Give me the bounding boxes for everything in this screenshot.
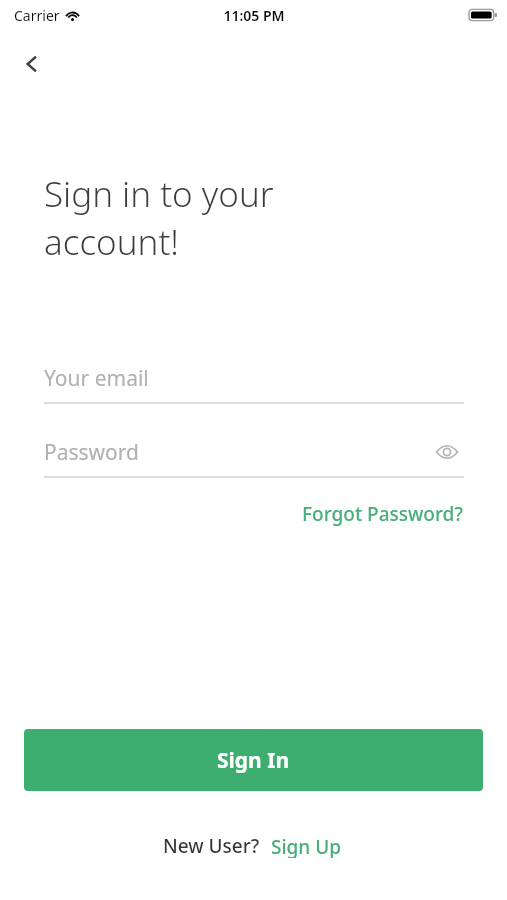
button[interactable]: Back [8,40,56,88]
staticText: Sign In [217,746,290,775]
staticText: New User? [163,833,260,859]
button[interactable]: Show password [430,435,464,469]
button[interactable]: Sign Up [269,830,344,862]
button[interactable]: Sign In [24,729,483,791]
staticText: Carrier [14,6,60,25]
staticText: Sign Up [271,834,342,858]
button[interactable]: Forgot Password? [300,497,465,531]
staticText: Forgot Password? [302,501,463,527]
button[interactable]: Password [44,432,464,478]
staticText: 11:05 PM [223,6,285,25]
button[interactable]: Your email [44,358,464,404]
staticText: Sign in to your [44,170,274,218]
staticText: Your email [44,364,149,393]
staticText: Password [44,438,139,467]
staticText: account! [44,218,179,266]
